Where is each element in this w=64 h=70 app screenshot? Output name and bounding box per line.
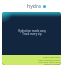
staticText: Smart reminders Daily hydration goals Sy… [38, 56, 60, 65]
button[interactable]: Smart reminders Daily hydration goals Sy… [2, 55, 61, 65]
staticText: Hydration made easy Track every sip [18, 29, 46, 36]
staticText: hydra [27, 3, 41, 10]
